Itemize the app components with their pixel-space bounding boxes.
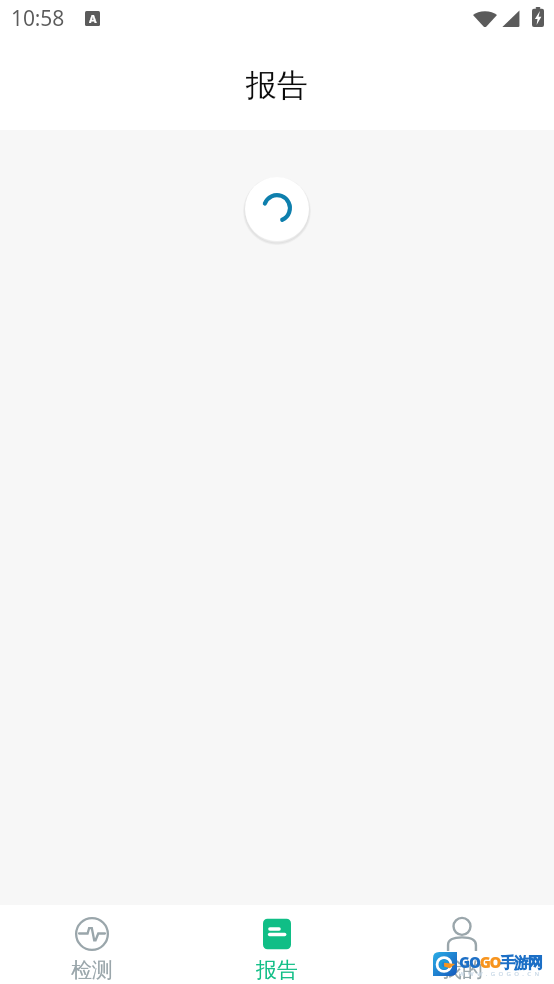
staticText: GOGO手游网 [459, 952, 542, 972]
button[interactable]: 报告 Report tab [184, 905, 369, 984]
staticText: 10:58 [11, 4, 65, 33]
button[interactable]: 我的 Profile tab [369, 905, 554, 984]
staticText: W W W . G O G O . C N [459, 970, 540, 978]
staticText: 我的 [441, 957, 483, 980]
staticText: 检测 [71, 957, 113, 980]
staticText: A [89, 11, 97, 26]
staticText: 报告 [246, 66, 308, 105]
button[interactable]: 检测 Detect tab [0, 905, 184, 984]
staticText: 报告 [256, 957, 298, 980]
